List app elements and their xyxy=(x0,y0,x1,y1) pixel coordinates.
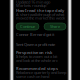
staticText: How I read the tape daily xyxy=(16,8,64,13)
staticText: Perspective on risk xyxy=(16,50,52,55)
staticText: Recommended steps xyxy=(16,66,58,71)
staticText: Share xyxy=(50,24,60,29)
staticText: Rebalance quarterly and keep xyxy=(16,70,66,75)
staticText: It helps to zoom out a bit xyxy=(16,54,57,59)
staticText: and look at the whole arc xyxy=(16,58,58,63)
staticText: Updated 16 min ago xyxy=(16,0,50,5)
staticText: Markets roundup xyxy=(16,3,46,8)
button[interactable]: Share xyxy=(44,23,66,30)
staticText: Sent Qwen a profit note xyxy=(16,42,55,47)
staticText: moved the market this week xyxy=(16,15,65,21)
button[interactable]: Continue xyxy=(16,23,39,30)
staticText: Continue xyxy=(20,24,35,29)
staticText: A short walkthrough of what xyxy=(16,12,64,17)
staticText: some cash on hand xyxy=(16,74,49,79)
staticText: Connor Bernard got it xyxy=(16,32,54,37)
